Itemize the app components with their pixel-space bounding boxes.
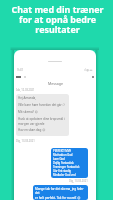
staticText: Dig, 13.03.2021 [16, 139, 35, 143]
staticText: Mange tak for det skema, jeg føler det e… [35, 187, 88, 199]
button[interactable]: Hej Amanda, [16, 94, 69, 136]
staticText: Dig, 13.03.2021 [69, 179, 88, 183]
staticText: Hav en skøn dag 😊 [18, 128, 46, 132]
staticText: ıl ● ▬ [84, 68, 93, 72]
staticText: Ville bare høre hvordan det går :) [18, 103, 65, 107]
staticText: Hej Amanda, [18, 96, 37, 100]
staticText: Husk at opdatere dine kropsmål i morgen … [18, 117, 65, 125]
staticText: Chat med din træner for at opnå bedre re… [11, 3, 104, 35]
staticText: Mit skema? 😊 [18, 110, 38, 114]
staticText: PERFEKT! MVH Motivation God bare God Dej… [53, 149, 80, 177]
staticText: 9:41 [17, 68, 24, 72]
staticText: Ida, 12.03.2021 [16, 88, 35, 92]
button[interactable]: PERFEKT! MVH Motivation God bare God Dej… [51, 148, 88, 178]
staticText: Message [48, 81, 63, 86]
button[interactable]: Mange tak for det skema, jeg føler det e… [33, 185, 88, 200]
